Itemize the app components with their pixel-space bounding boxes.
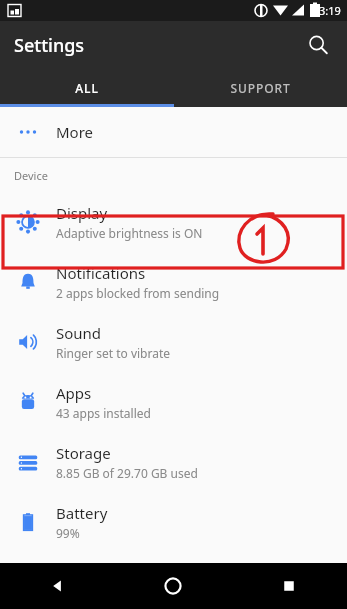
button[interactable]: SUPPORT	[173, 69, 347, 107]
staticText: More	[56, 122, 94, 142]
button[interactable]: Home	[115, 563, 231, 609]
staticText: Device	[14, 168, 48, 183]
staticText: Ringer set to vibrate	[56, 345, 171, 361]
staticText: 99%	[56, 525, 80, 541]
button[interactable]: ALL	[0, 69, 173, 107]
staticText: 43 apps installed	[56, 405, 151, 421]
staticText: Battery	[56, 503, 108, 523]
staticText: Sound	[56, 323, 102, 343]
staticText: 2 apps blocked from sending	[56, 285, 220, 301]
staticText: 3:19	[319, 3, 341, 18]
button[interactable]: Sound	[0, 312, 347, 372]
button[interactable]: Search	[299, 26, 337, 64]
staticText: Display	[56, 203, 108, 223]
staticText: ALL	[75, 80, 99, 96]
staticText: 8.85 GB of 29.70 GB used	[56, 465, 198, 481]
button[interactable]: Back	[0, 563, 115, 609]
staticText: Notifications	[56, 263, 146, 283]
button[interactable]: Notifications	[0, 252, 347, 312]
staticText: SUPPORT	[230, 80, 291, 96]
staticText: Adaptive brightness is ON	[56, 225, 203, 241]
staticText: Settings	[14, 33, 85, 58]
staticText: Storage	[56, 443, 111, 463]
button[interactable]: Storage	[0, 432, 347, 492]
button[interactable]: Apps	[0, 372, 347, 432]
button[interactable]: Recent apps	[231, 563, 347, 609]
staticText: Apps	[56, 383, 92, 403]
button[interactable]: Display	[0, 192, 347, 252]
button[interactable]: Battery	[0, 492, 347, 552]
button[interactable]: More	[0, 107, 347, 157]
